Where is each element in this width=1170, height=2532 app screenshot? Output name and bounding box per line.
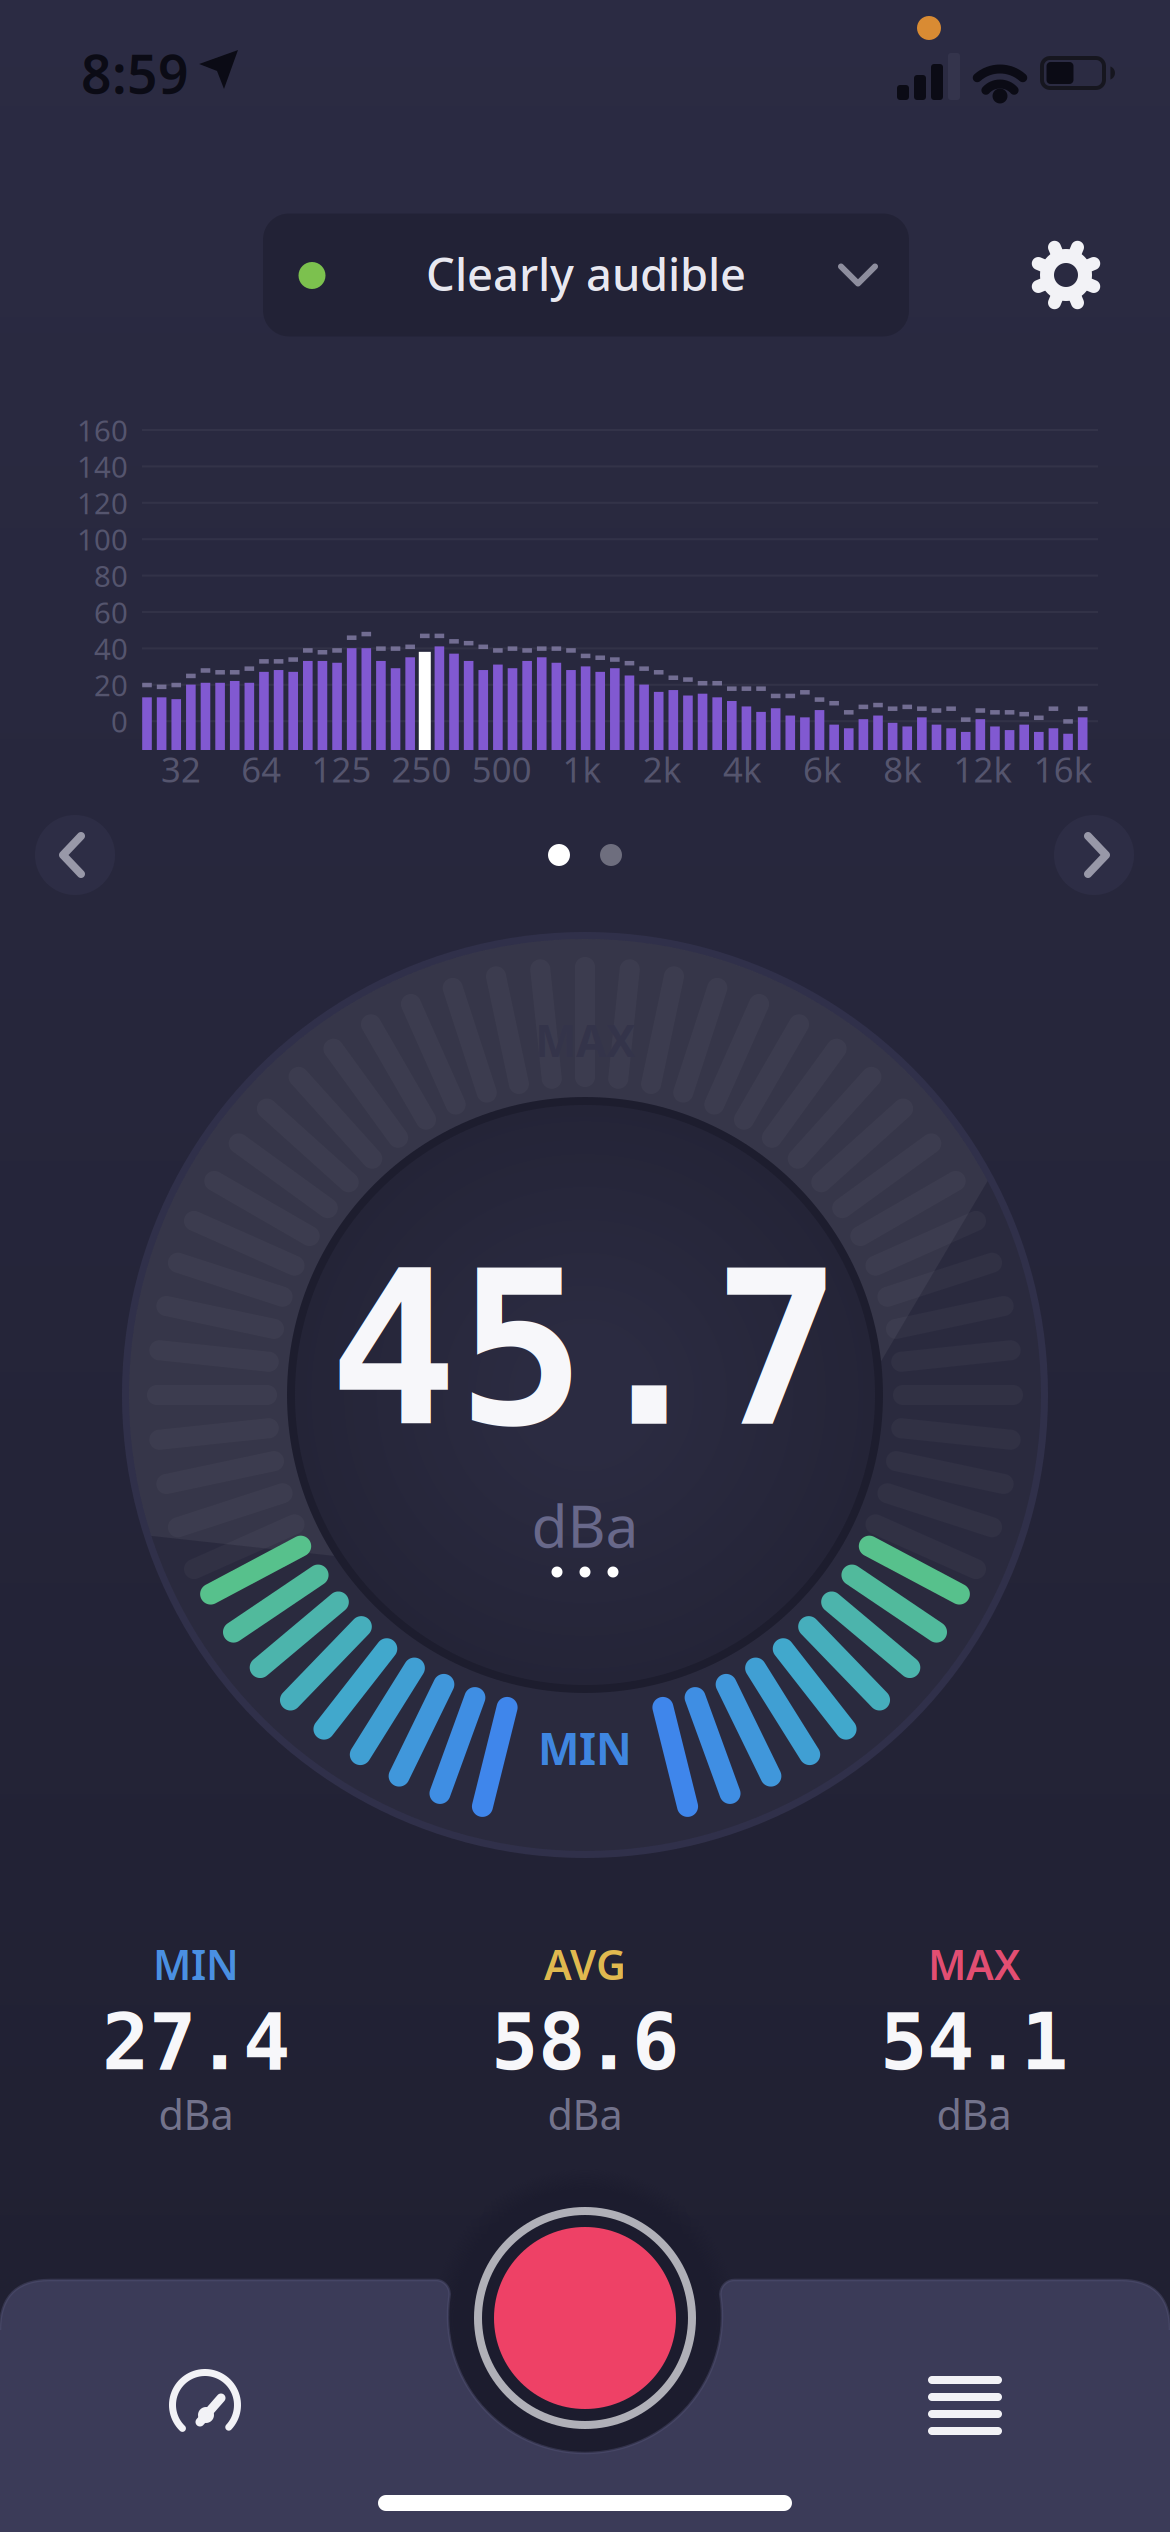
button[interactable]: Meter	[160, 2363, 250, 2453]
staticText: 20	[94, 665, 128, 704]
staticText: 1k	[562, 746, 601, 792]
button[interactable]: Settings	[1021, 230, 1111, 320]
staticText: 45.7	[329, 1229, 841, 1471]
button[interactable]: Record	[462, 2195, 708, 2441]
staticText: 125	[311, 746, 371, 792]
staticText: 500	[472, 746, 532, 792]
staticText: 54.1	[880, 1997, 1068, 2087]
staticText: 60	[94, 592, 128, 631]
staticText: dBa	[936, 2087, 1011, 2141]
staticText: Clearly audible	[426, 243, 746, 304]
staticText: 32	[161, 746, 201, 792]
staticText: 0	[111, 702, 128, 741]
staticText: 58.6	[491, 1997, 679, 2087]
staticText: 80	[94, 556, 128, 595]
staticText: 16k	[1034, 746, 1093, 792]
button[interactable]: Menu	[920, 2368, 1010, 2444]
button[interactable]: Next	[1054, 815, 1134, 895]
staticText: 120	[77, 483, 128, 522]
staticText: MIN	[153, 1937, 239, 1991]
staticText: 2k	[643, 746, 682, 792]
staticText: 8k	[883, 746, 922, 792]
staticText: 140	[77, 447, 128, 486]
staticText: 64	[241, 746, 281, 792]
staticText: 4k	[723, 746, 762, 792]
staticText: 12k	[953, 746, 1012, 792]
staticText: 160	[77, 410, 128, 449]
staticText: dBa	[158, 2087, 233, 2141]
staticText: MIN	[538, 1719, 632, 1777]
staticText: 6k	[803, 746, 842, 792]
staticText: 250	[392, 746, 452, 792]
staticText: dBa	[531, 1486, 638, 1564]
staticText: 100	[77, 520, 128, 559]
staticText: MAX	[535, 1011, 635, 1069]
staticText: AVG	[544, 1937, 626, 1991]
staticText: 8:59	[81, 38, 189, 108]
staticText: MAX	[928, 1937, 1020, 1991]
button[interactable]: Previous	[35, 815, 115, 895]
staticText: 40	[94, 629, 128, 668]
button[interactable]: Clearly audible	[263, 213, 909, 336]
staticText: 27.4	[102, 1997, 290, 2087]
staticText: dBa	[547, 2087, 622, 2141]
